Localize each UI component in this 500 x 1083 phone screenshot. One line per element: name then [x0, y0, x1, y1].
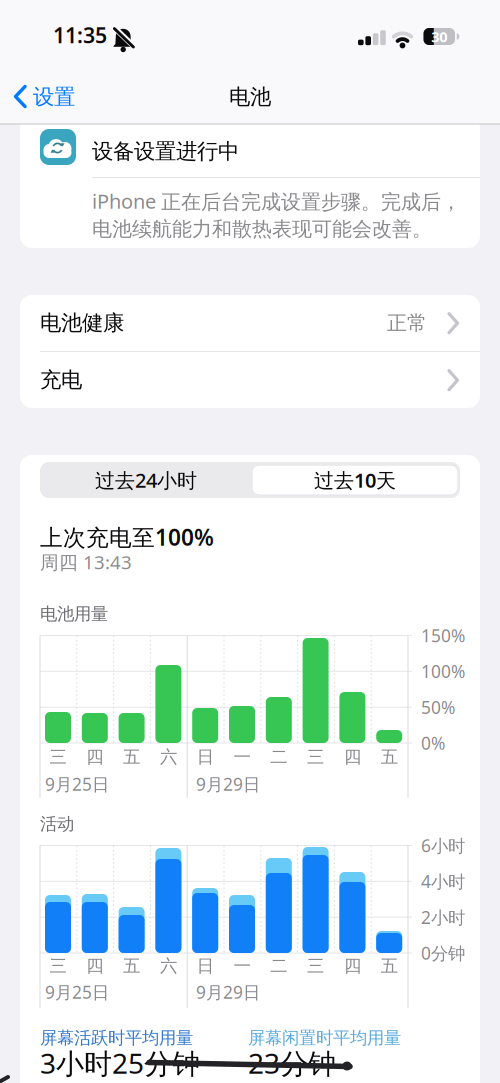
staticText: 六 [160, 746, 177, 768]
staticText: 设置 [33, 84, 75, 110]
staticText: 活动 [40, 813, 74, 835]
staticText: 正常 [387, 311, 427, 335]
staticText: 过去10天 [314, 467, 396, 493]
staticText: 上次充电至100% [40, 522, 214, 552]
staticText: iPhone 正在后台完成设置步骤。完成后， [92, 188, 461, 214]
staticText: 日 [197, 746, 214, 768]
staticText: 电池健康 [40, 310, 124, 336]
staticText: 电池续航能力和散热表现可能会改善。 [92, 217, 432, 241]
staticText: 9月25日 [45, 772, 109, 795]
staticText: 四 [344, 955, 361, 977]
button[interactable]: 屏幕活跃时平均用量 [40, 1026, 330, 1050]
staticText: 二 [270, 746, 287, 768]
staticText: 0分钟 [421, 941, 465, 964]
button[interactable]: 返回设置 [8, 75, 143, 119]
staticText: 五 [123, 746, 140, 768]
staticText: 二 [270, 955, 287, 977]
staticText: 充电 [40, 367, 82, 393]
staticText: 2小时 [421, 906, 465, 929]
staticText: 0% [421, 731, 445, 754]
staticText: 屏幕闲置时平均用量 [248, 1027, 401, 1049]
staticText: 三 [307, 746, 324, 768]
staticText: 100% [421, 660, 465, 683]
staticText: 4小时 [421, 870, 465, 893]
staticText: 6小时 [421, 834, 465, 857]
staticText: 9月29日 [196, 980, 260, 1003]
staticText: 五 [123, 955, 140, 977]
staticText: 四 [86, 746, 103, 768]
button[interactable]: 过去10天 [251, 464, 458, 495]
staticText: 三 [49, 955, 66, 977]
staticText: 一 [233, 955, 250, 977]
staticText: 3小时25分钟 [40, 1044, 200, 1082]
staticText: 日 [197, 955, 214, 977]
staticText: 30 [431, 27, 447, 46]
staticText: 六 [160, 955, 177, 977]
staticText: 五 [381, 746, 398, 768]
staticText: 过去24小时 [95, 467, 197, 493]
staticText: 150% [421, 624, 465, 647]
button[interactable]: 充电 [20, 351, 480, 408]
staticText: 四 [86, 955, 103, 977]
staticText: 一 [233, 746, 250, 768]
button[interactable]: 过去24小时 [40, 462, 252, 498]
staticText: 23分钟 [248, 1044, 336, 1082]
staticText: 屏幕活跃时平均用量 [40, 1027, 193, 1049]
staticText: 电池用量 [40, 603, 108, 625]
staticText: 三 [307, 955, 324, 977]
staticText: 9月29日 [196, 772, 260, 795]
staticText: 9月25日 [45, 980, 109, 1003]
staticText: 周四 13:43 [40, 550, 132, 574]
staticText: 11:35 [53, 21, 107, 49]
staticText: 三 [49, 746, 66, 768]
staticText: 设备设置进行中 [92, 138, 239, 165]
staticText: 50% [421, 696, 455, 719]
staticText: 电池 [229, 84, 271, 110]
staticText: 五 [381, 955, 398, 977]
button[interactable]: 电池健康 [20, 295, 480, 351]
button[interactable]: 屏幕闲置时平均用量 [248, 1026, 500, 1050]
staticText: 四 [344, 746, 361, 768]
